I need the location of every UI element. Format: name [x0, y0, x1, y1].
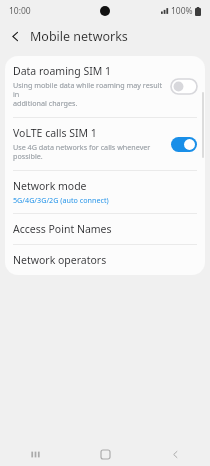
button[interactable]: VoLTE calls SIM 1 [5, 118, 205, 170]
button[interactable]: Network operators [5, 245, 205, 275]
button[interactable]: Back [140, 442, 210, 466]
button[interactable]: Network mode [5, 171, 205, 213]
button[interactable]: Toggle on [171, 137, 197, 152]
staticText: Using mobile data while roaming may resu… [13, 80, 165, 109]
button[interactable]: Access Point Names [5, 214, 205, 244]
button[interactable]: Home [70, 442, 140, 466]
staticText: 100% [171, 5, 193, 17]
staticText: Data roaming SIM 1 [13, 64, 112, 78]
button[interactable]: Toggle off [171, 79, 197, 94]
button[interactable]: Back [3, 24, 27, 48]
staticText: Mobile networks [30, 28, 128, 45]
staticText: VoLTE calls SIM 1 [13, 126, 97, 140]
button[interactable]: Recents [0, 442, 70, 466]
button[interactable]: Data roaming SIM 1 [5, 56, 205, 117]
staticText: Access Point Names [13, 222, 112, 236]
staticText: 5G/4G/3G/2G (auto connect) [13, 195, 109, 205]
staticText: Network mode [13, 179, 87, 193]
staticText: 10:00 [9, 5, 31, 17]
staticText: Use 4G data networks for calls whenever … [13, 142, 151, 162]
staticText: Network operators [13, 253, 107, 267]
